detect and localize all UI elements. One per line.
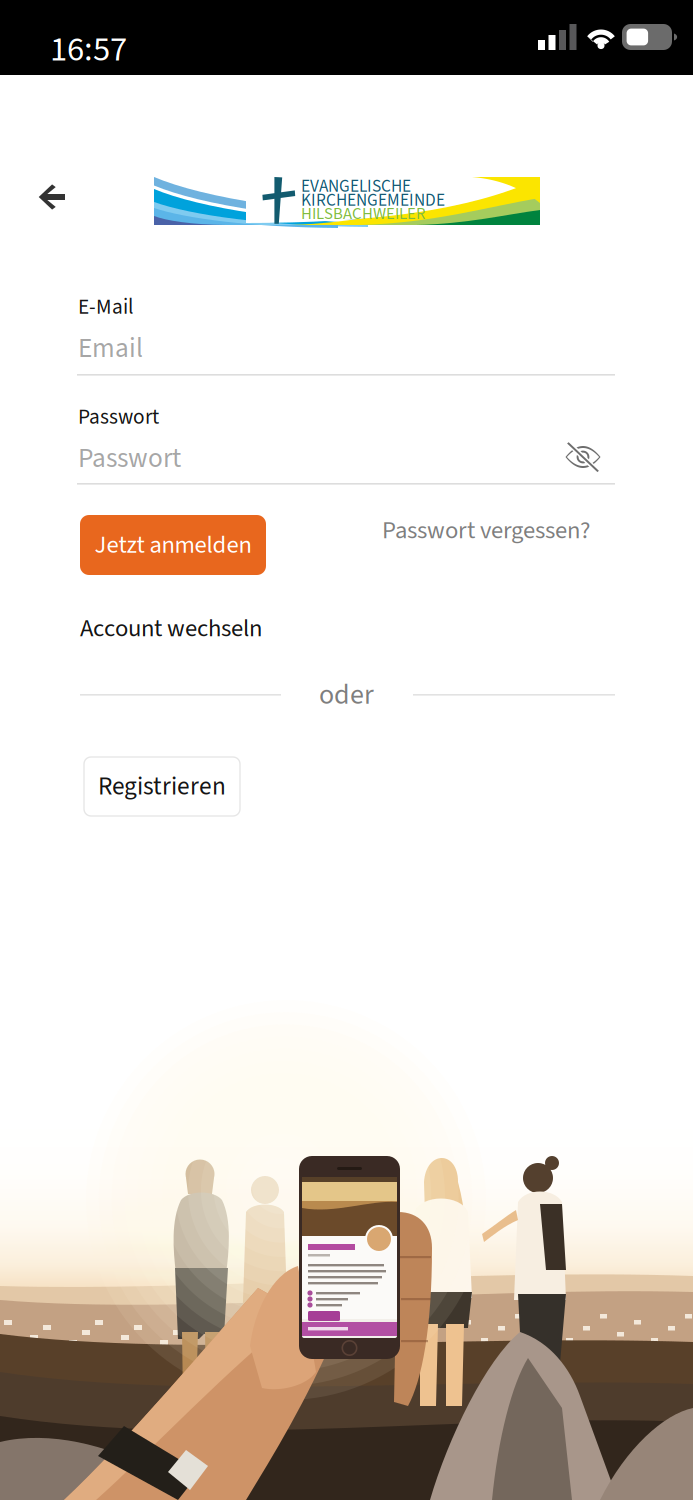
- staticText: Email: [78, 329, 143, 368]
- staticText: Passwort: [78, 439, 181, 478]
- button[interactable]: Account wechseln: [80, 611, 262, 646]
- staticText: Passwort: [78, 402, 159, 432]
- staticText: KIRCHENGEMEINDE: [301, 188, 445, 213]
- button[interactable]: Back: [24, 171, 80, 223]
- staticText: Account wechseln: [80, 611, 262, 646]
- staticText: Registrieren: [98, 768, 226, 805]
- staticText: Passwort vergessen?: [382, 513, 590, 548]
- staticText: 16:57: [50, 25, 127, 74]
- staticText: HILSBACHWEILER: [301, 202, 425, 226]
- button[interactable]: Registrieren: [84, 757, 240, 816]
- button[interactable]: Show password: [564, 442, 602, 472]
- staticText: oder: [319, 675, 374, 715]
- staticText: EVANGELISCHE: [301, 174, 411, 199]
- staticText: E-Mail: [78, 292, 133, 322]
- staticText: Jetzt anmelden: [94, 527, 251, 562]
- button[interactable]: Jetzt anmelden: [80, 515, 266, 575]
- button[interactable]: Passwort vergessen?: [382, 513, 590, 548]
